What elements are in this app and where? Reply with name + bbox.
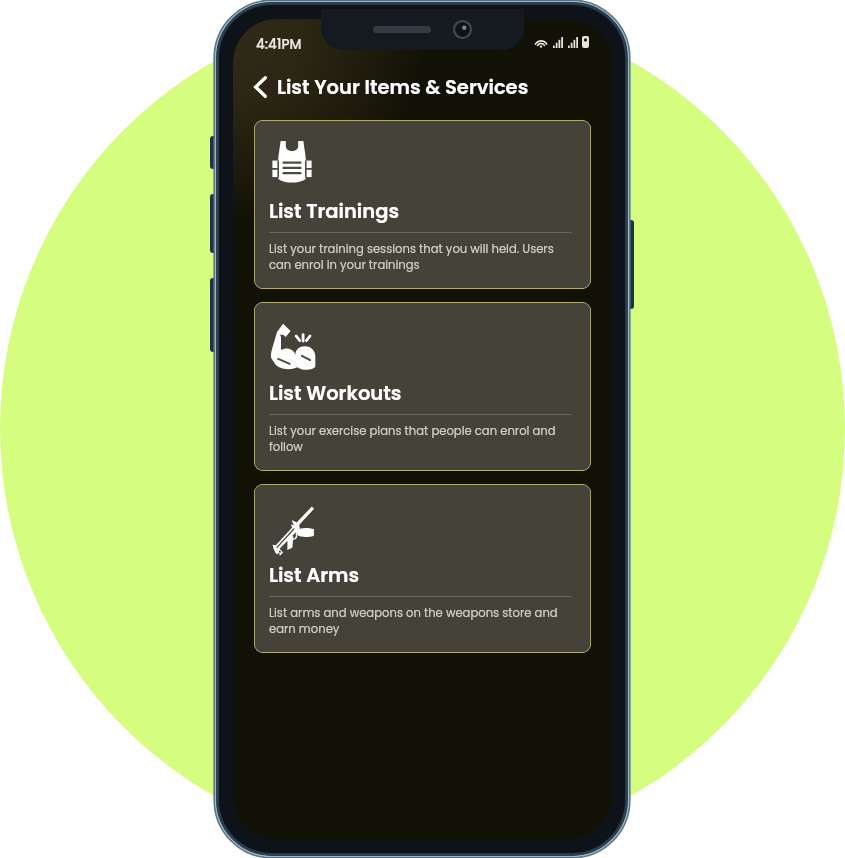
staticText: List arms and weapons on the weapons sto… (269, 605, 572, 637)
staticText: List your exercise plans that people can… (269, 423, 572, 455)
button[interactable]: Back (246, 73, 274, 101)
staticText: List your training sessions that you wil… (269, 241, 572, 273)
staticText: List Arms (269, 562, 360, 589)
button[interactable]: List Workouts (254, 302, 591, 471)
staticText: List Your Items & Services (277, 74, 529, 101)
staticText: List Workouts (269, 380, 402, 407)
button[interactable]: List Arms (254, 484, 591, 653)
staticText: 4:41PM (256, 35, 302, 54)
button[interactable]: List Trainings (254, 120, 591, 289)
staticText: List Trainings (269, 198, 400, 225)
